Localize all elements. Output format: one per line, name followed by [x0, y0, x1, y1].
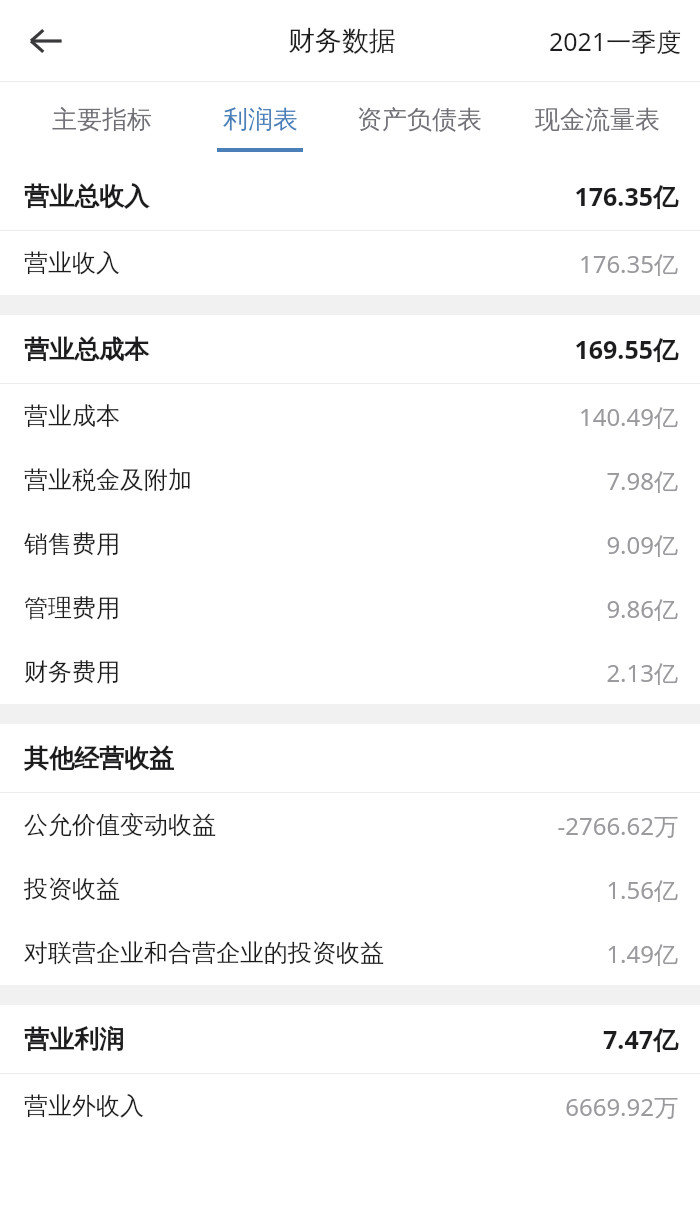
- staticText: 营业外收入: [24, 1091, 144, 1121]
- button[interactable]: 其他经营收益: [0, 724, 700, 792]
- staticText: 财务费用: [24, 657, 120, 687]
- button[interactable]: 公允价值变动收益: [0, 793, 700, 857]
- button[interactable]: 利润表: [189, 82, 330, 162]
- staticText: 2.13亿: [606, 656, 678, 689]
- staticText: 营业总收入: [24, 181, 149, 212]
- staticText: 7.47亿: [603, 1022, 678, 1056]
- staticText: 营业收入: [24, 248, 120, 278]
- button[interactable]: 财务费用: [0, 640, 700, 704]
- staticText: 公允价值变动收益: [24, 810, 216, 840]
- staticText: 管理费用: [24, 593, 120, 623]
- button[interactable]: 营业成本: [0, 384, 700, 448]
- button[interactable]: 管理费用: [0, 576, 700, 640]
- staticText: 对联营企业和合营企业的投资收益: [24, 938, 384, 968]
- button[interactable]: 2021一季度: [549, 24, 682, 58]
- staticText: 利润表: [223, 104, 298, 135]
- staticText: 1.49亿: [606, 937, 678, 970]
- staticText: 现金流量表: [535, 104, 660, 135]
- staticText: 176.35亿: [574, 179, 678, 213]
- staticText: 营业税金及附加: [24, 465, 192, 495]
- staticText: 176.35亿: [578, 247, 678, 280]
- button[interactable]: 资产负债表: [330, 82, 508, 162]
- button[interactable]: Back: [14, 9, 78, 73]
- staticText: 1.56亿: [606, 873, 678, 906]
- staticText: 6669.92万: [565, 1090, 678, 1123]
- button[interactable]: 营业收入: [0, 231, 700, 295]
- button[interactable]: 销售费用: [0, 512, 700, 576]
- staticText: 7.98亿: [606, 464, 678, 497]
- staticText: 140.49亿: [578, 400, 678, 433]
- staticText: 9.86亿: [606, 592, 678, 625]
- button[interactable]: 对联营企业和合营企业的投资收益: [0, 921, 700, 985]
- staticText: 169.55亿: [574, 332, 678, 366]
- staticText: 营业利润: [24, 1024, 124, 1055]
- staticText: 其他经营收益: [24, 743, 174, 774]
- button[interactable]: 投资收益: [0, 857, 700, 921]
- staticText: 营业总成本: [24, 334, 149, 365]
- button[interactable]: 营业外收入: [0, 1074, 700, 1138]
- staticText: 主要指标: [52, 104, 152, 135]
- staticText: -2766.62万: [557, 809, 678, 842]
- button[interactable]: 营业税金及附加: [0, 448, 700, 512]
- button[interactable]: 主要指标: [14, 82, 189, 162]
- button[interactable]: 现金流量表: [508, 82, 686, 162]
- staticText: 营业成本: [24, 401, 120, 431]
- staticText: 9.09亿: [606, 528, 678, 561]
- staticText: 资产负债表: [357, 104, 482, 135]
- staticText: 财务数据: [288, 24, 396, 58]
- button[interactable]: 营业总成本: [0, 315, 700, 383]
- button[interactable]: 营业利润: [0, 1005, 700, 1073]
- staticText: 销售费用: [24, 529, 120, 559]
- button[interactable]: 营业总收入: [0, 162, 700, 230]
- staticText: 投资收益: [24, 874, 120, 904]
